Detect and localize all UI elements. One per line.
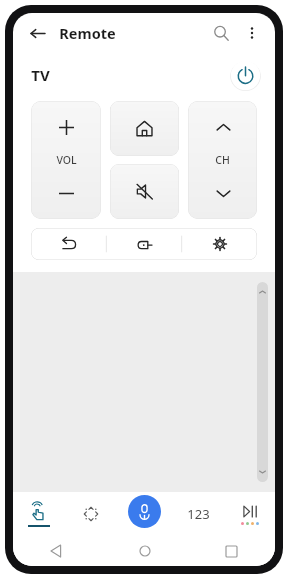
staticText: Remote: [59, 23, 116, 43]
button[interactable]: Voice search: [128, 495, 161, 528]
button[interactable]: Volume down: [53, 180, 79, 206]
button[interactable]: More options: [239, 20, 265, 46]
button[interactable]: Back: [31, 228, 107, 260]
button[interactable]: Mute: [110, 164, 179, 219]
button[interactable]: Volume up: [53, 114, 79, 140]
button[interactable]: Channel up: [210, 114, 236, 140]
button[interactable]: Channel down: [210, 180, 236, 206]
button[interactable]: Power: [230, 60, 261, 91]
button[interactable]: Home: [110, 101, 179, 156]
staticText: 123: [187, 505, 210, 523]
button[interactable]: Home: [101, 536, 188, 566]
staticText: CH: [215, 153, 230, 167]
button[interactable]: Settings: [182, 228, 257, 260]
button[interactable]: Touchpad mode: [13, 492, 65, 536]
button[interactable]: Touchpad: [13, 272, 275, 492]
button[interactable]: Input source: [107, 228, 182, 260]
button[interactable]: Back: [23, 19, 51, 47]
staticText: VOL: [56, 153, 77, 167]
button[interactable]: Playback controls: [224, 492, 275, 536]
button[interactable]: Back: [13, 536, 101, 566]
button[interactable]: Recents: [188, 536, 275, 566]
button[interactable]: Search: [207, 19, 235, 47]
button[interactable]: D-pad mode: [65, 492, 116, 536]
button[interactable]: 123: [173, 492, 224, 536]
staticText: TV: [31, 65, 50, 85]
